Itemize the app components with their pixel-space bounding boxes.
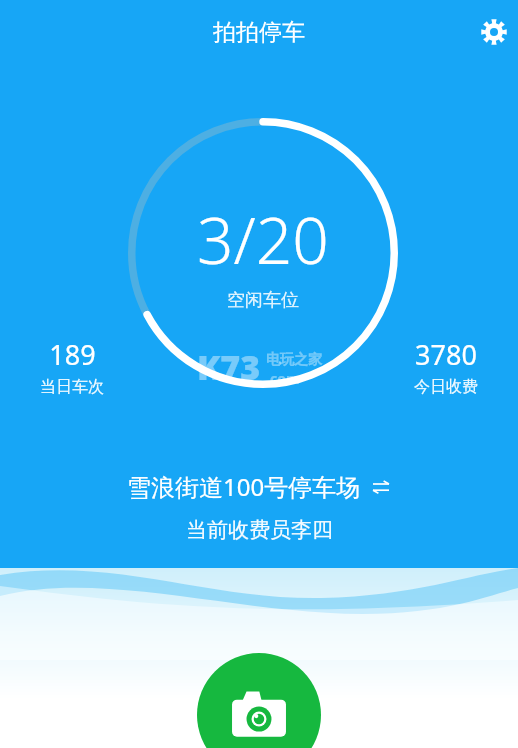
staticText: 当前收费员李四: [186, 517, 333, 543]
button[interactable]: 189: [16, 336, 128, 397]
button[interactable]: Settings: [470, 8, 518, 56]
staticText: 当日车次: [40, 377, 104, 397]
staticText: K73: [197, 344, 261, 390]
staticText: 空闲车位: [227, 289, 299, 312]
button[interactable]: 3780: [390, 336, 502, 397]
staticText: 189: [49, 336, 96, 373]
staticText: 3780: [415, 336, 477, 373]
button[interactable]: Take photo: [197, 653, 321, 748]
staticText: 电玩之家: [266, 351, 322, 369]
other: Switch lot: [371, 477, 391, 497]
button[interactable]: 雪浪街道100号停车场: [127, 470, 391, 503]
staticText: 拍拍停车: [213, 18, 305, 47]
staticText: 今日收费: [414, 377, 478, 397]
staticText: 3/20: [197, 196, 329, 283]
staticText: 雪浪街道100号停车场: [127, 470, 361, 503]
staticText: .com: [266, 369, 300, 388]
